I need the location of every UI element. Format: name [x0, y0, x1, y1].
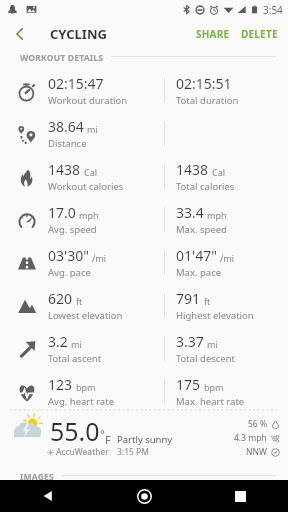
- button[interactable]: 03'30": [0, 241, 150, 284]
- staticText: bpm: [76, 381, 96, 393]
- button[interactable]: 33.4: [150, 198, 288, 241]
- staticText: 175: [176, 375, 201, 394]
- button[interactable]: Recents: [192, 480, 288, 512]
- staticText: mi: [207, 338, 218, 350]
- staticText: 123: [48, 375, 73, 394]
- staticText: Avg. speed: [48, 223, 97, 236]
- button[interactable]: Back: [0, 19, 38, 48]
- button[interactable]: 791: [150, 284, 288, 327]
- staticText: /mi: [220, 252, 235, 264]
- button[interactable]: 175: [150, 370, 288, 413]
- staticText: ft: [204, 295, 211, 307]
- button[interactable]: Home: [96, 480, 192, 512]
- staticText: AccuWeather: [56, 446, 109, 458]
- staticText: 3:54: [263, 3, 283, 17]
- staticText: 791: [176, 289, 201, 308]
- staticText: mph: [79, 209, 99, 221]
- button[interactable]: 3.37: [150, 327, 288, 370]
- staticText: Distance: [48, 137, 87, 150]
- staticText: Workout duration: [48, 94, 128, 107]
- staticText: 4.3 mph: [234, 432, 267, 444]
- staticText: °: [100, 426, 105, 441]
- staticText: ft: [76, 295, 83, 307]
- button[interactable]: Back: [0, 480, 96, 512]
- staticText: WORKOUT DETAILS: [20, 52, 104, 61]
- staticText: 3.2: [48, 332, 68, 351]
- staticText: DELETE: [241, 27, 278, 41]
- staticText: 1438: [176, 160, 209, 179]
- staticText: Highest elevation: [176, 309, 254, 322]
- staticText: mi: [87, 123, 98, 135]
- staticText: 17.0: [48, 203, 76, 222]
- staticText: 1438: [48, 160, 81, 179]
- staticText: mph: [207, 209, 227, 221]
- staticText: Total ascent: [48, 352, 102, 365]
- staticText: SHARE: [196, 27, 230, 41]
- staticText: Max. speed: [176, 223, 227, 236]
- staticText: IMAGES: [20, 471, 54, 480]
- button[interactable]: 3.2: [0, 327, 150, 370]
- staticText: Avg. heart rate: [48, 395, 114, 408]
- staticText: CYCLING: [50, 25, 107, 43]
- staticText: 56 %: [248, 418, 267, 430]
- staticText: Partly sunny: [117, 433, 173, 446]
- staticText: 02:15:47: [48, 74, 104, 93]
- staticText: 02:15:51: [176, 74, 232, 93]
- staticText: 03'30": [48, 246, 89, 265]
- button[interactable]: 1438: [0, 155, 150, 198]
- staticText: /mi: [92, 252, 107, 264]
- staticText: Total calories: [176, 180, 235, 193]
- button[interactable]: 620: [0, 284, 150, 327]
- button[interactable]: 02:15:51: [150, 69, 288, 112]
- button[interactable]: 38.64: [0, 112, 150, 155]
- staticText: Max. pace: [176, 266, 222, 279]
- staticText: 55.0: [50, 414, 100, 448]
- staticText: Cal: [84, 166, 98, 178]
- staticText: Workout calories: [48, 180, 124, 193]
- button[interactable]: DELETE: [236, 20, 283, 48]
- staticText: Max. heart rate: [176, 395, 245, 408]
- button[interactable]: 17.0: [0, 198, 150, 241]
- staticText: 3.37: [176, 332, 204, 351]
- staticText: 3:15 PM: [117, 446, 149, 458]
- staticText: 38.64: [48, 117, 84, 136]
- staticText: Total duration: [176, 94, 239, 107]
- staticText: 01'47": [176, 246, 217, 265]
- button[interactable]: 1438: [150, 155, 288, 198]
- staticText: mi: [71, 338, 82, 350]
- button[interactable]: 123: [0, 370, 150, 413]
- staticText: Avg. pace: [48, 266, 91, 279]
- staticText: bpm: [204, 381, 224, 393]
- staticText: 620: [48, 289, 73, 308]
- staticText: Lowest elevation: [48, 309, 123, 322]
- staticText: Cal: [212, 166, 226, 178]
- button[interactable]: 55.0: [0, 414, 288, 462]
- button[interactable]: 01'47": [150, 241, 288, 284]
- staticText: F: [105, 432, 111, 447]
- button[interactable]: 02:15:47: [0, 69, 150, 112]
- staticText: 33.4: [176, 203, 204, 222]
- staticText: NNW: [246, 446, 267, 458]
- staticText: Total descent: [176, 352, 236, 365]
- button[interactable]: SHARE: [190, 20, 236, 48]
